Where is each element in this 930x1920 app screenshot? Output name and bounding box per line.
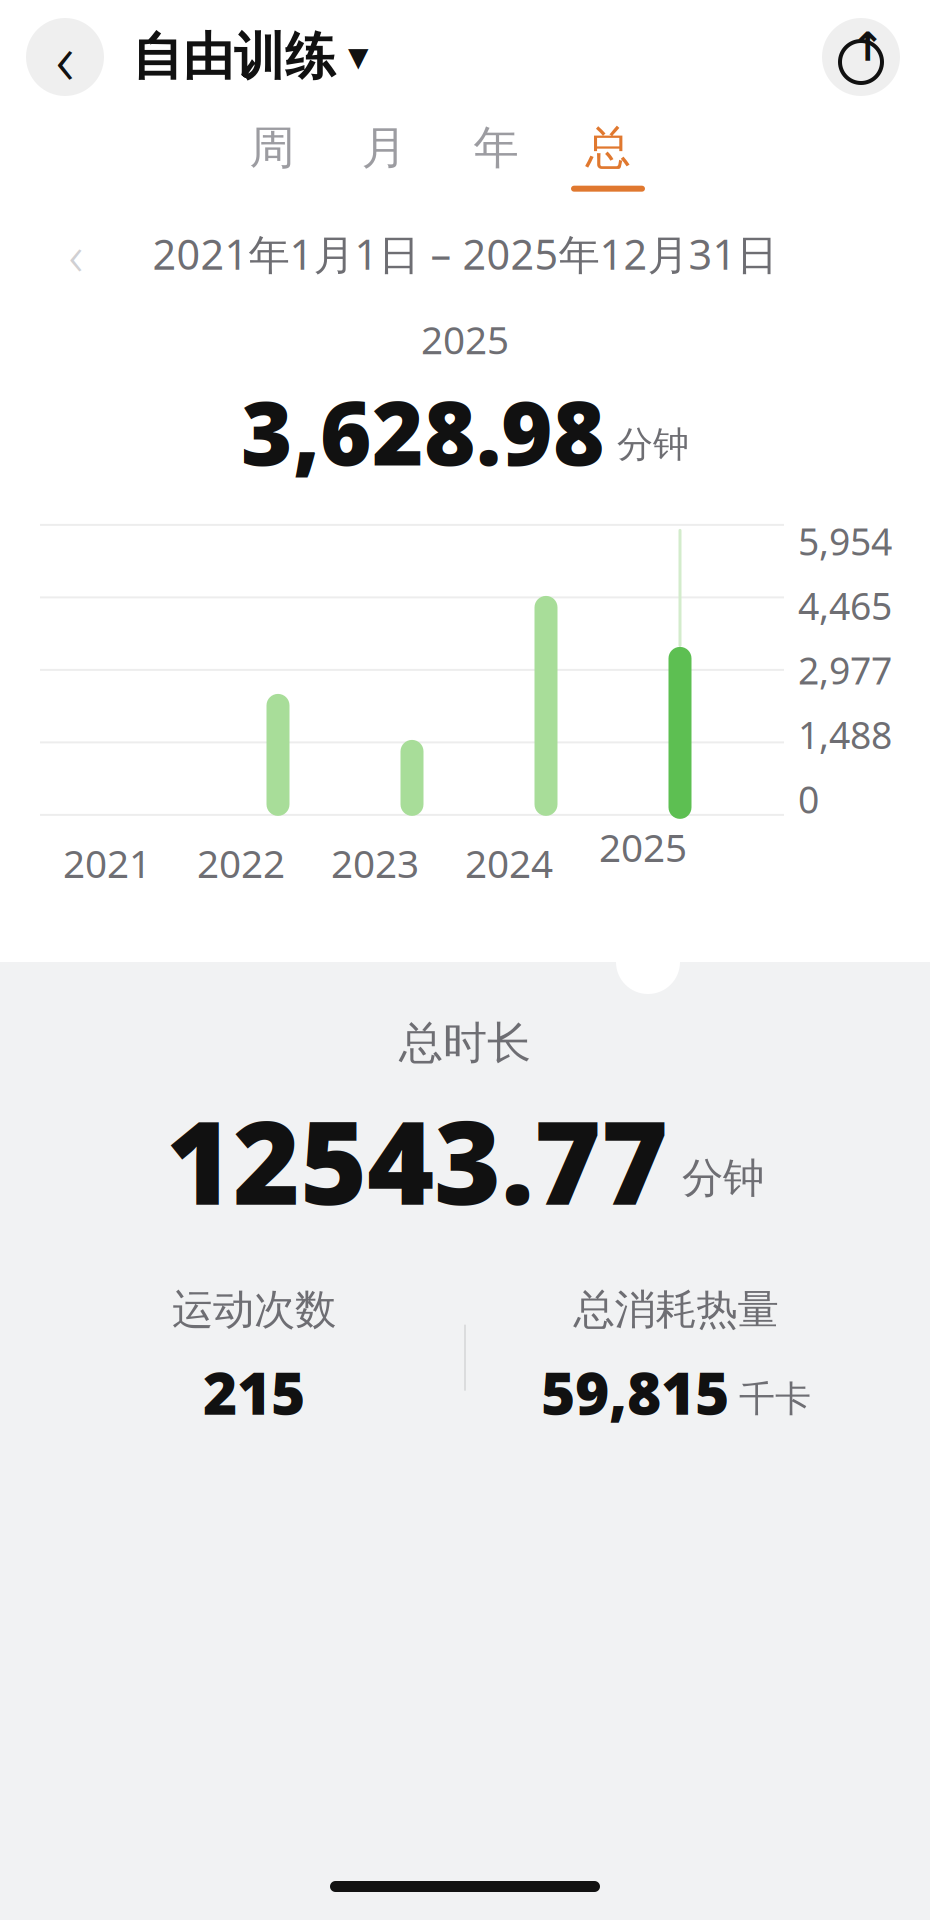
staticText: 4,465	[798, 581, 892, 630]
staticText: 2021	[63, 837, 151, 888]
staticText: 0	[798, 774, 819, 824]
staticText: 2021年1月1日 – 2025年12月31日	[152, 226, 777, 281]
staticText: 2022	[197, 837, 285, 888]
staticText: ↑	[851, 24, 885, 70]
staticText: 周	[249, 120, 294, 176]
staticText: 运动次数	[172, 1284, 336, 1335]
button[interactable]: 返回	[26, 18, 104, 96]
staticText: 分钟	[617, 422, 689, 467]
staticText: 自由训练	[132, 26, 336, 88]
staticText: 2023	[331, 837, 419, 888]
staticText: 千卡	[739, 1377, 811, 1421]
staticText: 总消耗热量	[573, 1284, 778, 1335]
staticText: 分钟	[682, 1153, 764, 1204]
staticText: 总	[585, 120, 630, 176]
button[interactable]: 自由训练	[104, 18, 383, 96]
button[interactable]: 月	[328, 120, 440, 192]
staticText: ‹	[68, 216, 83, 291]
staticText: ▼	[348, 42, 369, 72]
staticText: ‹	[55, 9, 74, 105]
button[interactable]: 周	[216, 120, 328, 192]
button[interactable]: 年	[440, 120, 552, 192]
staticText: 总时长	[399, 1016, 531, 1070]
button[interactable]: 分享	[822, 18, 900, 96]
button[interactable]: 上一区间	[40, 218, 112, 290]
button[interactable]: 总	[552, 120, 664, 192]
staticText: 59,815	[541, 1353, 729, 1431]
staticText: 月	[361, 120, 406, 176]
staticText: 1,488	[798, 710, 892, 759]
staticText: 12543.77	[166, 1084, 668, 1236]
staticText: 3,628.98	[241, 373, 605, 490]
staticText: 215	[203, 1353, 305, 1431]
staticText: 5,954	[798, 516, 892, 566]
staticText: 2025	[599, 821, 687, 872]
staticText: 2025	[421, 314, 509, 365]
staticText: 2,977	[798, 645, 892, 695]
staticText: 年	[473, 120, 518, 176]
staticText: 2024	[465, 837, 553, 888]
